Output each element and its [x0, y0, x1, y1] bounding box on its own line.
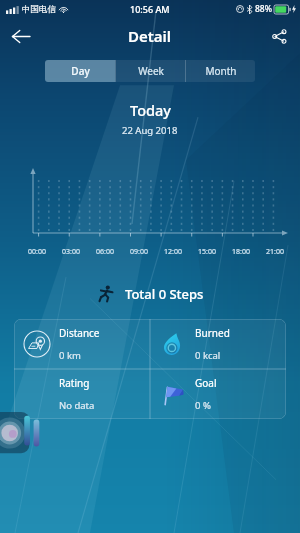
- button[interactable]: Rating: [14, 369, 150, 419]
- staticText: 18:00: [232, 247, 250, 257]
- staticText: 09:00: [130, 247, 148, 257]
- staticText: 0 km: [59, 349, 81, 362]
- staticText: Today: [130, 100, 171, 120]
- staticText: Total 0 Steps: [125, 285, 204, 303]
- staticText: Rating: [59, 376, 90, 390]
- staticText: 0 kcal: [195, 349, 221, 362]
- button[interactable]: Distance: [14, 319, 150, 369]
- staticText: 10:56 AM: [130, 3, 170, 15]
- staticText: 21:00: [266, 247, 284, 257]
- button[interactable]: Back: [0, 18, 40, 54]
- staticText: No data: [59, 399, 95, 412]
- staticText: Month: [205, 64, 237, 78]
- staticText: 0 %: [195, 399, 211, 412]
- button[interactable]: Week: [116, 60, 185, 82]
- staticText: 中国电信: [22, 4, 56, 15]
- staticText: 22 Aug 2018: [122, 124, 178, 137]
- staticText: 88%: [255, 3, 272, 15]
- staticText: Burned: [195, 326, 230, 340]
- staticText: 15:00: [198, 247, 216, 257]
- staticText: 12:00: [164, 247, 182, 257]
- staticText: Detail: [128, 26, 172, 46]
- button[interactable]: Month: [186, 60, 255, 82]
- button[interactable]: Share: [258, 18, 300, 54]
- button[interactable]: Goal: [150, 369, 286, 419]
- staticText: 06:00: [96, 247, 114, 257]
- staticText: Goal: [195, 376, 217, 390]
- staticText: 03:00: [62, 247, 80, 257]
- staticText: 00:00: [28, 247, 46, 257]
- staticText: Distance: [59, 326, 100, 340]
- staticText: Week: [138, 64, 164, 78]
- button[interactable]: Assistive touch: [0, 409, 44, 457]
- button[interactable]: Day: [45, 60, 115, 82]
- staticText: Day: [71, 64, 90, 78]
- button[interactable]: Burned: [150, 319, 286, 369]
